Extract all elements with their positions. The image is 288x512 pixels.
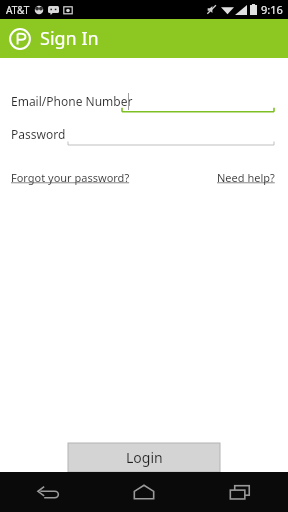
button[interactable]: Need help? (217, 170, 275, 185)
button[interactable]: Back (0, 472, 96, 512)
staticText: 9:16 (261, 2, 283, 17)
staticText: Login (126, 448, 163, 467)
button[interactable]: Recent apps (192, 472, 288, 512)
staticText: Password (11, 126, 66, 142)
staticText: Sign In (40, 26, 99, 51)
staticText: Forgot your password? (11, 170, 130, 185)
staticText: AT&T (6, 3, 30, 17)
button[interactable]: Home (96, 472, 192, 512)
staticText: Email/Phone Number (11, 93, 133, 109)
button[interactable]: Email/Phone Number (0, 89, 288, 113)
button[interactable]: Forgot your password? (11, 170, 130, 185)
staticText: Need help? (217, 170, 275, 185)
button[interactable]: Password (0, 122, 288, 146)
button[interactable]: Login (68, 443, 220, 472)
